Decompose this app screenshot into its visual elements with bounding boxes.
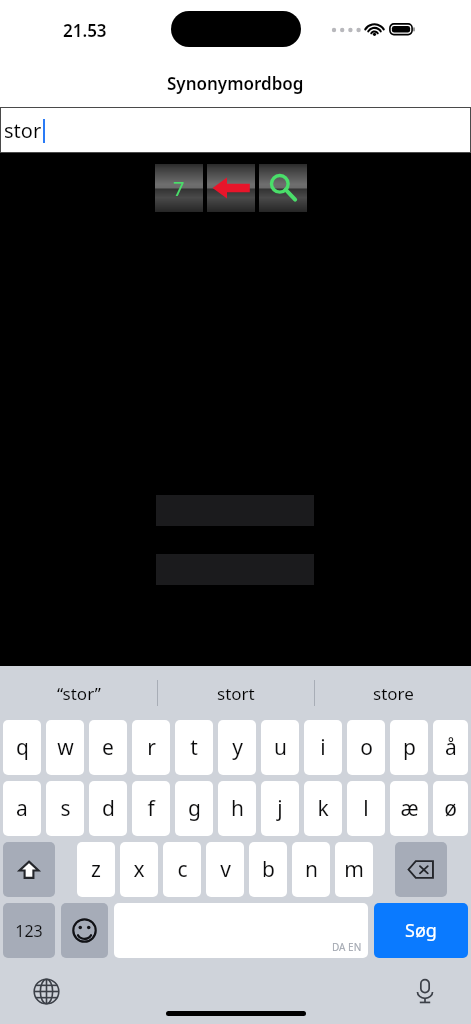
staticText: ø bbox=[444, 794, 457, 823]
staticText: e bbox=[102, 733, 114, 762]
button[interactable]: x bbox=[120, 842, 158, 897]
button[interactable]: Skift sprog bbox=[26, 971, 66, 1011]
button[interactable]: 123 bbox=[3, 903, 55, 958]
staticText: y bbox=[232, 733, 243, 762]
staticText: f bbox=[147, 794, 155, 823]
button[interactable]: y bbox=[218, 720, 256, 775]
button[interactable]: u bbox=[261, 720, 299, 775]
staticText: c bbox=[177, 855, 188, 884]
staticText: Søg bbox=[405, 918, 437, 943]
staticText: u bbox=[274, 733, 287, 762]
button[interactable]: stor bbox=[1, 108, 470, 152]
staticText: DA EN bbox=[332, 940, 362, 954]
staticText: w bbox=[57, 733, 74, 762]
staticText: 123 bbox=[15, 920, 43, 942]
staticText: a bbox=[16, 794, 28, 823]
staticText: å bbox=[445, 733, 457, 762]
staticText: b bbox=[262, 855, 275, 884]
button[interactable]: m bbox=[335, 842, 373, 897]
staticText: n bbox=[305, 855, 318, 884]
staticText: store bbox=[373, 682, 414, 705]
button[interactable]: a bbox=[3, 781, 41, 836]
button[interactable]: s bbox=[46, 781, 84, 836]
staticText: v bbox=[220, 855, 231, 884]
staticText: m bbox=[344, 855, 364, 884]
button[interactable]: b bbox=[249, 842, 287, 897]
staticText: h bbox=[231, 794, 244, 823]
button[interactable]: z bbox=[77, 842, 115, 897]
staticText: stort bbox=[217, 682, 255, 705]
button[interactable]: n bbox=[292, 842, 330, 897]
button[interactable]: Diktering bbox=[405, 971, 445, 1011]
button[interactable]: t bbox=[175, 720, 213, 775]
button[interactable]: k bbox=[304, 781, 342, 836]
staticText: o bbox=[360, 733, 373, 762]
staticText: 21.53 bbox=[63, 19, 107, 42]
staticText: stor bbox=[4, 117, 42, 144]
button[interactable]: ø bbox=[433, 781, 468, 836]
button[interactable]: æ bbox=[390, 781, 428, 836]
button[interactable]: store bbox=[315, 666, 471, 720]
staticText: p bbox=[403, 733, 416, 762]
button[interactable]: v bbox=[206, 842, 244, 897]
button[interactable]: c bbox=[163, 842, 201, 897]
button[interactable]: Mellemrum bbox=[114, 903, 368, 958]
button[interactable]: stort bbox=[158, 666, 314, 720]
button[interactable]: Antal synonymer: 7 bbox=[155, 164, 203, 212]
button[interactable]: p bbox=[390, 720, 428, 775]
button[interactable]: f bbox=[132, 781, 170, 836]
button[interactable]: l bbox=[347, 781, 385, 836]
staticText: “stor” bbox=[57, 682, 101, 705]
button[interactable]: g bbox=[175, 781, 213, 836]
button[interactable]: Tilbage bbox=[207, 164, 255, 212]
staticText: r bbox=[147, 733, 156, 762]
button[interactable]: Slet bbox=[395, 842, 447, 897]
button[interactable]: Emoji bbox=[61, 903, 108, 958]
staticText: t bbox=[190, 733, 198, 762]
staticText: s bbox=[60, 794, 71, 823]
staticText: j bbox=[277, 794, 283, 823]
staticText: æ bbox=[400, 794, 419, 823]
button[interactable]: Søg bbox=[374, 903, 468, 958]
button[interactable]: “stor” bbox=[0, 666, 157, 720]
button[interactable]: r bbox=[132, 720, 170, 775]
staticText: g bbox=[188, 794, 201, 823]
staticText: Synonymordbog bbox=[167, 72, 304, 95]
button[interactable]: d bbox=[89, 781, 127, 836]
staticText: l bbox=[363, 794, 369, 823]
button[interactable]: j bbox=[261, 781, 299, 836]
button[interactable]: i bbox=[304, 720, 342, 775]
staticText: k bbox=[317, 794, 329, 823]
staticText: d bbox=[102, 794, 115, 823]
button[interactable]: h bbox=[218, 781, 256, 836]
staticText: 7 bbox=[173, 175, 185, 202]
button[interactable]: Skift bbox=[3, 842, 55, 897]
button[interactable]: å bbox=[433, 720, 468, 775]
staticText: q bbox=[16, 733, 29, 762]
button[interactable]: q bbox=[3, 720, 41, 775]
button[interactable]: w bbox=[46, 720, 84, 775]
button[interactable]: e bbox=[89, 720, 127, 775]
button[interactable]: o bbox=[347, 720, 385, 775]
staticText: i bbox=[320, 733, 326, 762]
staticText: x bbox=[133, 855, 145, 884]
staticText: z bbox=[91, 855, 101, 884]
button[interactable]: Søg bbox=[259, 164, 307, 212]
